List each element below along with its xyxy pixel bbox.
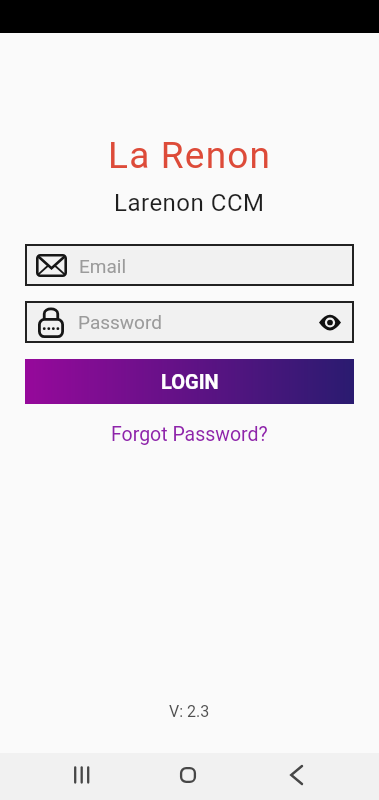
staticText: La Renon: [108, 134, 272, 177]
staticText: Password: [78, 311, 162, 333]
button[interactable]: Email: [25, 244, 354, 286]
button[interactable]: [64, 753, 100, 800]
button[interactable]: LOGIN: [25, 359, 354, 404]
staticText: Forgot Password?: [111, 423, 268, 446]
button[interactable]: [169, 753, 207, 800]
staticText: V: 2.3: [169, 702, 210, 721]
staticText: LOGIN: [161, 370, 219, 393]
button[interactable]: Forgot Password?: [111, 423, 268, 446]
staticText: Larenon CCM: [114, 189, 265, 215]
button[interactable]: [278, 753, 314, 800]
button[interactable]: Password: [25, 301, 354, 343]
staticText: Email: [79, 255, 127, 277]
